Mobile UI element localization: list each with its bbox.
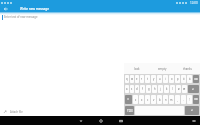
button[interactable]: Recent apps xyxy=(117,117,124,124)
staticText: look xyxy=(134,67,140,71)
button[interactable]: Attach file xyxy=(0,110,23,114)
staticText: k xyxy=(166,87,168,91)
button[interactable]: ä xyxy=(187,75,192,83)
button[interactable]: æ xyxy=(182,85,187,93)
staticText: thanks xyxy=(183,67,192,71)
button[interactable]: look xyxy=(124,63,150,74)
button[interactable]: Navigate up xyxy=(3,6,9,12)
staticText: empty xyxy=(158,67,167,71)
button[interactable]: c xyxy=(145,95,150,104)
button[interactable]: l xyxy=(170,85,175,93)
button[interactable]: v xyxy=(151,95,156,104)
staticText: h xyxy=(154,87,156,91)
button[interactable]: x xyxy=(139,95,144,104)
staticText: v xyxy=(153,98,155,102)
button[interactable]: y xyxy=(151,75,156,83)
staticText: ?123 xyxy=(127,109,133,113)
button[interactable]: empty xyxy=(150,63,175,74)
staticText: ↵ xyxy=(191,109,194,112)
button[interactable]: p xyxy=(175,75,180,83)
button[interactable]: t xyxy=(145,75,150,83)
staticText: c xyxy=(147,98,149,102)
button[interactable]: g xyxy=(146,85,151,93)
staticText: y xyxy=(153,77,155,81)
staticText: a xyxy=(126,87,128,91)
staticText: , xyxy=(177,98,178,102)
staticText: 12:00 xyxy=(190,1,198,5)
button[interactable]: Hide keyboard xyxy=(191,118,196,123)
staticText: q xyxy=(126,77,128,81)
staticText: ä xyxy=(189,77,191,81)
button[interactable]: m xyxy=(169,95,174,104)
staticText: e xyxy=(136,77,138,81)
button[interactable]: , xyxy=(175,95,180,104)
button[interactable]: z xyxy=(133,95,138,104)
button[interactable]: i xyxy=(163,75,168,83)
staticText: Enter text of new message xyxy=(4,15,38,19)
staticText: g xyxy=(148,87,150,91)
staticText: s xyxy=(131,87,133,91)
button[interactable]: n xyxy=(163,95,168,104)
staticText: j xyxy=(160,87,161,91)
button[interactable]: ö xyxy=(181,75,186,83)
button[interactable]: ø xyxy=(176,85,181,93)
staticText: ⌫ xyxy=(194,78,198,81)
staticText: Write new message xyxy=(20,7,49,11)
staticText: i xyxy=(165,77,166,81)
button[interactable]: u xyxy=(157,75,162,83)
staticText: ö xyxy=(183,77,185,81)
staticText: r xyxy=(141,77,143,81)
staticText: w xyxy=(131,77,134,81)
button[interactable]: Delete xyxy=(193,95,199,104)
staticText: b xyxy=(159,98,161,102)
button[interactable]: thanks xyxy=(175,63,200,74)
button[interactable]: h xyxy=(152,85,157,93)
staticText: x xyxy=(141,98,143,102)
button[interactable]: Back xyxy=(77,117,84,124)
staticText: m xyxy=(170,98,173,102)
button[interactable]: a xyxy=(125,85,129,93)
button[interactable]: Home xyxy=(97,117,104,124)
button[interactable]: Enter xyxy=(188,85,199,93)
button[interactable]: o xyxy=(169,75,174,83)
button[interactable]: k xyxy=(164,85,169,93)
staticText: p xyxy=(177,77,179,81)
staticText: n xyxy=(165,98,167,102)
button[interactable]: f xyxy=(140,85,145,93)
button[interactable]: Symbols xyxy=(125,106,134,115)
button[interactable]: q xyxy=(125,75,129,83)
staticText: f xyxy=(142,87,143,91)
button[interactable]: w xyxy=(130,75,134,83)
button[interactable]: d xyxy=(135,85,139,93)
staticText: l xyxy=(172,87,173,91)
staticText: Attach file xyxy=(10,110,23,114)
button[interactable]: ! xyxy=(187,95,192,104)
button[interactable]: s xyxy=(130,85,134,93)
button[interactable]: . xyxy=(181,95,186,104)
button[interactable]: b xyxy=(157,95,162,104)
staticText: ↵ xyxy=(192,88,195,91)
staticText: u xyxy=(159,77,161,81)
staticText: z xyxy=(135,98,137,102)
button[interactable]: Backspace xyxy=(193,75,199,83)
staticText: ø xyxy=(178,87,180,91)
staticText: d xyxy=(136,87,138,91)
staticText: o xyxy=(171,77,173,81)
staticText: ⌫ xyxy=(194,98,198,101)
staticText: . xyxy=(183,98,184,102)
button[interactable]: e xyxy=(135,75,139,83)
staticText: t xyxy=(147,77,148,81)
staticText: æ xyxy=(183,87,186,91)
button[interactable]: r xyxy=(140,75,144,83)
button[interactable]: Shift xyxy=(125,95,132,104)
button[interactable]: Send xyxy=(185,106,199,115)
staticText: ⇧ xyxy=(127,98,130,101)
button[interactable]: j xyxy=(158,85,163,93)
staticText: ! xyxy=(189,98,190,102)
